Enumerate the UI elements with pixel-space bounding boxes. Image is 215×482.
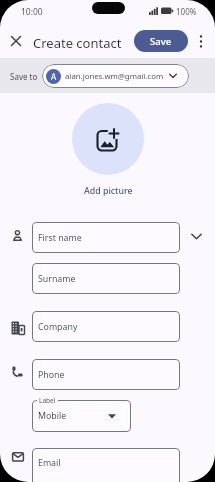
staticText: First name xyxy=(38,232,82,244)
staticText: Label xyxy=(39,396,56,405)
staticText: Mobile xyxy=(38,410,67,422)
staticText: alan.jones.wm@gmail.com xyxy=(65,71,164,82)
staticText: Save xyxy=(150,35,172,48)
button[interactable] xyxy=(188,228,205,245)
staticText: Phone xyxy=(38,369,65,381)
button[interactable] xyxy=(72,103,144,175)
staticText: Company xyxy=(38,321,78,333)
staticText: Create contact xyxy=(33,34,122,52)
staticText: Email xyxy=(38,457,61,469)
button[interactable]: Company xyxy=(32,311,180,342)
button[interactable]: First name xyxy=(32,222,180,253)
button[interactable] xyxy=(8,33,24,49)
button[interactable]: Mobile xyxy=(32,400,131,432)
staticText: A xyxy=(51,71,57,82)
button[interactable]: Surname xyxy=(32,263,180,294)
staticText: Surname xyxy=(38,273,76,285)
button[interactable]: Phone xyxy=(32,359,180,390)
button[interactable]: A xyxy=(42,64,189,88)
staticText: 10:00 xyxy=(21,6,43,18)
staticText: 100% xyxy=(176,6,197,17)
staticText: Save to xyxy=(10,71,38,82)
button[interactable]: Add picture xyxy=(84,185,133,197)
button[interactable]: Save xyxy=(134,30,188,52)
button[interactable]: Email xyxy=(32,448,180,482)
button[interactable] xyxy=(192,32,209,50)
